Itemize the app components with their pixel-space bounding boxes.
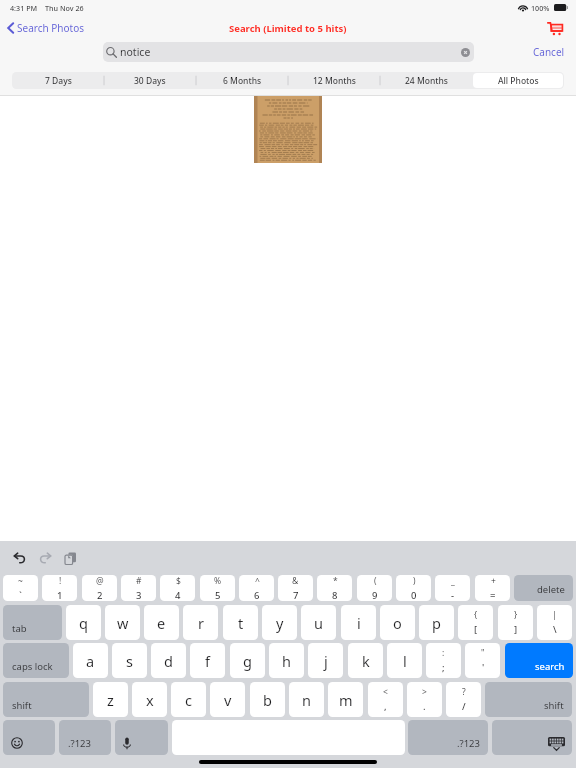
button[interactable]: 12 Months	[289, 73, 379, 88]
staticText: \	[553, 623, 557, 636]
button[interactable]: $	[160, 575, 195, 601]
button[interactable]: q	[66, 605, 101, 640]
staticText: k	[362, 651, 370, 671]
button[interactable]: g	[230, 643, 265, 678]
button[interactable]: p	[419, 605, 454, 640]
staticText: j	[324, 651, 328, 671]
staticText: ;	[442, 661, 445, 674]
staticText: /	[462, 700, 466, 713]
button[interactable]: *	[317, 575, 352, 601]
staticText: v	[224, 690, 232, 710]
button[interactable]: ?	[446, 682, 481, 717]
button[interactable]: %	[200, 575, 235, 601]
button[interactable]: f	[190, 643, 225, 678]
button[interactable]: s	[112, 643, 147, 678]
staticText: &	[292, 575, 299, 587]
button[interactable]: 24 Months	[381, 73, 471, 88]
button[interactable]: caps lock	[3, 643, 69, 678]
button[interactable]: i	[341, 605, 376, 640]
button[interactable]: Undo	[6, 545, 32, 571]
button[interactable]: All Photos	[473, 73, 563, 88]
staticText: z	[107, 690, 114, 710]
button[interactable]: t	[223, 605, 258, 640]
staticText: =	[490, 589, 496, 601]
button[interactable]: }	[498, 605, 533, 640]
button[interactable]: h	[269, 643, 304, 678]
button[interactable]: :	[426, 643, 461, 678]
staticText: #	[136, 575, 142, 587]
staticText: 24 Months	[405, 75, 448, 87]
staticText: Search (Limited to 5 hits)	[229, 22, 347, 35]
button[interactable]: Cancel	[533, 45, 565, 59]
button[interactable]: w	[105, 605, 140, 640]
button[interactable]: d	[151, 643, 186, 678]
staticText: (	[374, 575, 377, 587]
button[interactable]: x	[132, 682, 167, 717]
staticText: 4	[175, 589, 181, 601]
button[interactable]: c	[171, 682, 206, 717]
button[interactable]: delete	[514, 575, 573, 601]
button[interactable]: a	[73, 643, 108, 678]
button[interactable]: .?123	[408, 720, 488, 755]
button[interactable]: (	[357, 575, 392, 601]
button[interactable]: !	[42, 575, 77, 601]
button[interactable]: notice	[103, 42, 474, 62]
button[interactable]: 6 Months	[197, 73, 287, 88]
staticText: f	[205, 651, 210, 671]
button[interactable]: Emoji	[3, 720, 55, 755]
button[interactable]: Hide keyboard	[492, 720, 572, 755]
button[interactable]: ~	[3, 575, 38, 601]
button[interactable]: Paste	[58, 546, 83, 571]
button[interactable]: +	[475, 575, 510, 601]
button[interactable]: >	[407, 682, 442, 717]
staticText: 1	[57, 589, 63, 601]
button[interactable]: tab	[3, 605, 62, 640]
staticText: b	[263, 690, 272, 710]
staticText: ,	[384, 700, 387, 713]
button[interactable]: {	[458, 605, 493, 640]
button[interactable]: m	[328, 682, 363, 717]
staticText: 6	[254, 589, 260, 601]
button[interactable]: j	[308, 643, 343, 678]
staticText: tab	[12, 622, 27, 635]
staticText: search	[535, 660, 565, 673]
button[interactable]: shift	[485, 682, 572, 717]
button[interactable]: search	[505, 643, 573, 678]
button[interactable]: y	[262, 605, 297, 640]
button[interactable]: #	[121, 575, 156, 601]
button[interactable]: n	[289, 682, 324, 717]
staticText: a	[86, 651, 95, 671]
button[interactable]: v	[210, 682, 245, 717]
button[interactable]: "	[465, 643, 500, 678]
staticText: 3	[136, 589, 142, 601]
button[interactable]: )	[396, 575, 431, 601]
button[interactable]: e	[144, 605, 179, 640]
button[interactable]: Dictate	[115, 720, 168, 755]
button[interactable]: Clear	[461, 48, 470, 57]
button[interactable]: b	[250, 682, 285, 717]
button[interactable]: r	[183, 605, 218, 640]
button[interactable]: z	[93, 682, 128, 717]
button[interactable]: Redo	[32, 545, 58, 571]
button[interactable]: l	[387, 643, 422, 678]
staticText: o	[393, 613, 402, 633]
staticText: {	[474, 609, 478, 621]
button[interactable]: 30 Days	[105, 73, 195, 88]
button[interactable]: Search Photos	[0, 18, 92, 38]
button[interactable]: |	[537, 605, 572, 640]
button[interactable]: @	[82, 575, 117, 601]
button[interactable]: 7 Days	[13, 73, 103, 88]
button[interactable]: k	[348, 643, 383, 678]
button[interactable]: ^	[239, 575, 274, 601]
button[interactable]: &	[278, 575, 313, 601]
button[interactable]: o	[380, 605, 415, 640]
button[interactable]: Cart	[542, 16, 568, 40]
staticText: u	[314, 613, 323, 633]
staticText: t	[238, 613, 244, 633]
button[interactable]: _	[435, 575, 470, 601]
button[interactable]: .?123	[59, 720, 111, 755]
button[interactable]: u	[301, 605, 336, 640]
button[interactable]: shift	[3, 682, 89, 717]
button[interactable]: <	[368, 682, 403, 717]
